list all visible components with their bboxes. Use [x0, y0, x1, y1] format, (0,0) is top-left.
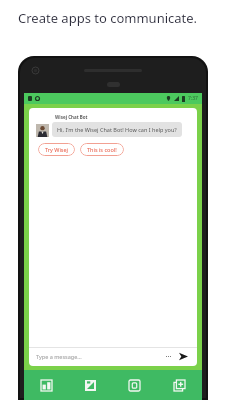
- button[interactable]: More options: [164, 352, 173, 361]
- staticText: Create apps to communicate.: [18, 9, 198, 27]
- staticText: Try Wisej: [45, 146, 68, 153]
- button[interactable]: Dashboard: [24, 370, 68, 400]
- staticText: Hi, I'm the Wisej Chat Bot! How can I he…: [57, 126, 177, 133]
- button[interactable]: Media: [112, 370, 157, 400]
- staticText: Wisej Chat Bot: [55, 114, 88, 120]
- button[interactable]: Send: [177, 350, 190, 363]
- staticText: Type a message...: [36, 353, 164, 360]
- button[interactable]: Add: [157, 370, 202, 400]
- staticText: This is cool!: [87, 146, 117, 153]
- button[interactable]: Charts: [68, 370, 112, 400]
- button[interactable]: This is cool!: [80, 143, 124, 156]
- staticText: 7:37: [188, 95, 198, 102]
- button[interactable]: Try Wisej: [38, 143, 75, 156]
